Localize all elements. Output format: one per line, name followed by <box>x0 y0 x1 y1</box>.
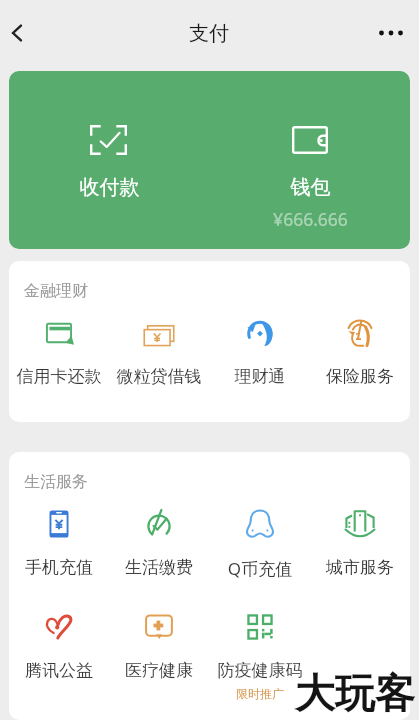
staticText: 大玩客 <box>295 668 415 718</box>
staticText: 腾讯公益 <box>9 660 109 681</box>
button[interactable]: 医疗健康 <box>109 603 209 681</box>
button[interactable]: 微粒贷借钱 <box>109 309 209 387</box>
button[interactable]: 钱包 <box>210 71 410 249</box>
staticText: 生活服务 <box>24 472 88 492</box>
button[interactable]: More options <box>369 11 413 55</box>
staticText: 信用卡还款 <box>9 366 109 387</box>
staticText: 手机充值 <box>9 557 109 578</box>
staticText: 支付 <box>189 21 229 46</box>
staticText: 限时推广 <box>236 686 284 701</box>
button[interactable]: 生活缴费 <box>109 500 209 578</box>
staticText: ¥666.666 <box>210 207 410 231</box>
button[interactable]: 城市服务 <box>310 500 410 578</box>
staticText: 微粒贷借钱 <box>109 366 209 387</box>
staticText: 金融理财 <box>24 281 88 301</box>
staticText: 生活缴费 <box>109 557 209 578</box>
button[interactable]: Back <box>0 11 39 55</box>
staticText: 城市服务 <box>310 557 410 578</box>
button[interactable]: 保险服务 <box>310 309 410 387</box>
staticText: 理财通 <box>210 366 310 387</box>
button[interactable]: 理财通 <box>210 309 310 387</box>
staticText: 防疫健康码 <box>210 660 310 681</box>
button[interactable]: Q币充值 <box>210 500 310 578</box>
button[interactable]: 信用卡还款 <box>9 309 109 387</box>
staticText: 保险服务 <box>310 366 410 387</box>
staticText: 收付款 <box>9 175 210 200</box>
button[interactable]: 防疫健康码 <box>210 603 310 681</box>
staticText: Q币充值 <box>210 557 310 580</box>
button[interactable]: 腾讯公益 <box>9 603 109 681</box>
staticText: 钱包 <box>210 175 410 200</box>
button[interactable]: 手机充值 <box>9 500 109 578</box>
staticText: 医疗健康 <box>109 660 209 681</box>
button[interactable]: 收付款 <box>9 71 210 249</box>
